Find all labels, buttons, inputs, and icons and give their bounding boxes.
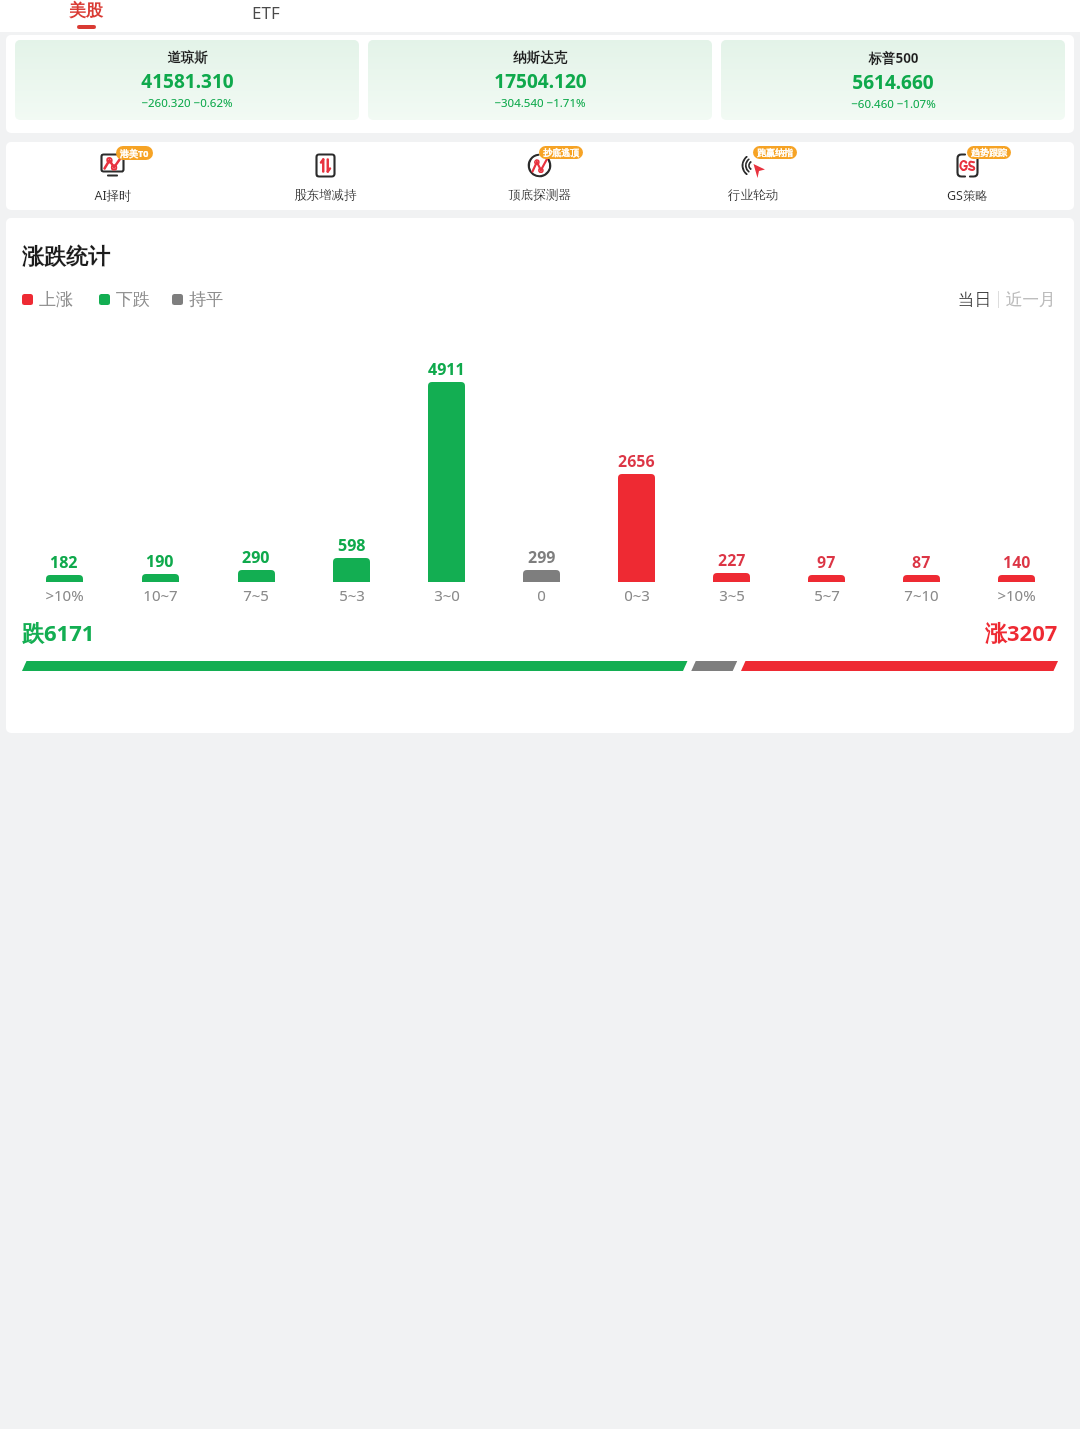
button[interactable]: 顶底探测器 [432,145,646,203]
button[interactable]: GS策略 [860,145,1074,204]
button[interactable]: 美股 [56,0,116,29]
other: AI择时 [100,153,125,178]
staticText: 纳斯达克 [513,49,567,66]
button[interactable]: 道琼斯 [15,40,359,120]
staticText: 趋势跟踪 [971,147,1007,158]
staticText: 190 [146,550,174,572]
staticText: 182 [50,551,78,573]
staticText: 87 [912,551,931,573]
button[interactable]: 近一月 [1004,289,1058,310]
staticText: 3~5 [719,585,745,605]
staticText: 股东增减持 [294,187,357,203]
button[interactable]: 持平 [172,289,223,310]
staticText: 598 [338,534,366,556]
staticText: −260.320 −0.62% [141,95,233,111]
button[interactable]: 当日 [956,289,993,310]
staticText: 3~0 [434,585,460,605]
staticText: 0~3 [624,585,650,605]
button[interactable]: 行业轮动 [646,145,860,203]
staticText: −60.460 −1.07% [851,96,936,112]
staticText: −304.540 −1.71% [494,95,586,111]
staticText: 10~7 [143,585,178,605]
staticText: 港美T0 [120,147,149,159]
staticText: 道琼斯 [167,49,208,66]
button[interactable]: 标普500 [721,40,1065,120]
staticText: >10% [45,585,84,605]
staticText: GS策略 [947,187,988,204]
staticText: 持平 [189,289,223,310]
staticText: 行业轮动 [728,187,778,203]
staticText: 140 [1003,551,1031,573]
staticText: 5~7 [814,585,840,605]
staticText: 当日 [958,289,991,310]
staticText: 17504.120 [494,68,587,94]
button[interactable]: 下跌 [99,289,150,310]
staticText: 41581.310 [141,68,234,94]
other: GS策略 [955,153,980,178]
button[interactable]: ETF [236,1,296,24]
staticText: 美股 [69,0,103,21]
staticText: 5~3 [339,585,365,605]
staticText: 7~5 [243,585,269,605]
staticText: 5614.660 [852,69,934,95]
staticText: 97 [817,551,836,573]
staticText: 顶底探测器 [508,187,571,203]
staticText: 下跌 [116,289,150,310]
staticText: 近一月 [1006,289,1056,310]
staticText: 涨3207 [985,617,1058,647]
staticText: 290 [242,546,270,568]
staticText: 299 [528,546,556,568]
staticText: 涨跌统计 [22,243,110,271]
staticText: ETF [252,1,280,24]
staticText: 抄底逃顶 [543,147,579,158]
staticText: 跌6171 [22,617,95,647]
staticText: 0 [537,585,546,605]
staticText: 上涨 [39,289,73,310]
staticText: 4911 [428,358,465,380]
other: 顶底探测器 [527,153,552,178]
staticText: 跑赢纳指 [757,147,793,158]
button[interactable]: 纳斯达克 [368,40,712,120]
other: 行业轮动 [741,153,766,178]
button[interactable]: 股东增减持 [219,145,432,203]
staticText: 227 [718,549,746,571]
button[interactable]: AI择时 [6,145,219,204]
staticText: 2656 [618,450,655,472]
staticText: AI择时 [94,187,132,204]
staticText: 7~10 [904,585,939,605]
other: 股东增减持 [313,153,338,178]
staticText: >10% [997,585,1036,605]
button[interactable]: 上涨 [22,289,73,310]
staticText: 标普500 [868,49,919,67]
